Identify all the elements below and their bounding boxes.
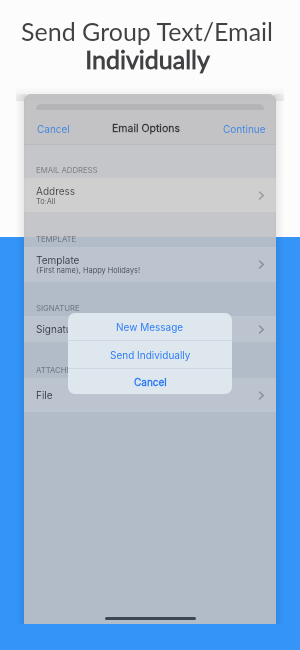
button[interactable]: Address	[24, 178, 276, 212]
staticText: TEMPLATE	[36, 234, 77, 243]
staticText: {First name}, Happy Holidays!	[36, 266, 141, 275]
staticText: Address	[36, 185, 76, 197]
staticText: File	[36, 389, 53, 401]
button[interactable]: Signature	[24, 316, 276, 342]
staticText: Email Options	[112, 122, 180, 135]
staticText: ATTACHMENT	[36, 365, 89, 374]
staticText: Cancel	[134, 376, 167, 388]
staticText: New Message	[116, 321, 184, 333]
button[interactable]: New Message	[68, 313, 232, 340]
staticText: Template	[36, 254, 80, 266]
button[interactable]: Send Individually	[68, 341, 232, 368]
button[interactable]: Continue	[223, 123, 266, 135]
staticText: Individually	[85, 44, 210, 74]
button[interactable]: Cancel	[68, 369, 232, 394]
staticText: EMAIL ADDRESS	[36, 165, 98, 174]
staticText: Signature	[36, 323, 82, 335]
button[interactable]: File	[24, 378, 276, 412]
button[interactable]: Template	[24, 247, 276, 282]
button[interactable]: Cancel	[37, 123, 70, 135]
staticText: Send Group Text/Email	[21, 16, 273, 46]
staticText: SIGNATURE	[36, 303, 80, 312]
staticText: Send Individually	[110, 349, 191, 361]
staticText: To:All	[36, 197, 56, 206]
